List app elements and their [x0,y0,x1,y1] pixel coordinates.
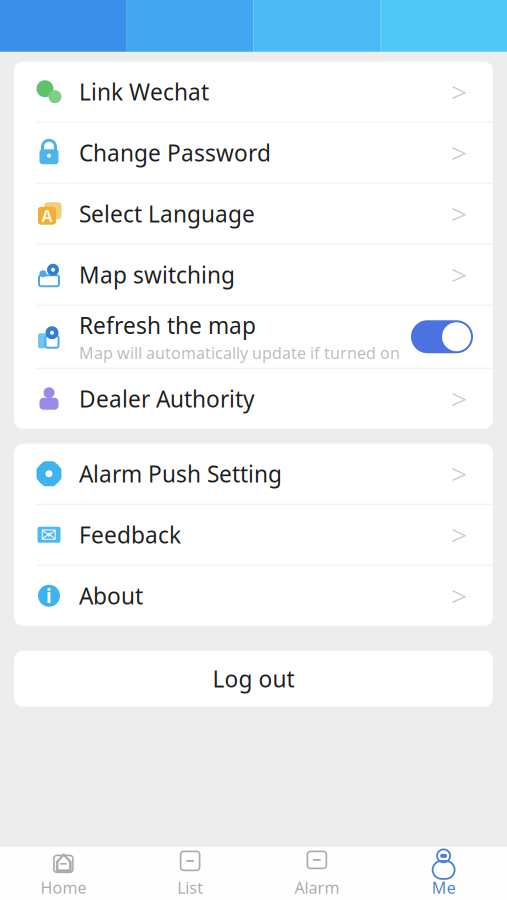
button[interactable]: Log out [0,651,507,707]
staticText: Refresh the map [79,310,256,340]
staticText: > [451,256,467,293]
staticText: Link Wechat [79,77,209,107]
staticText: Feedback [79,520,181,550]
staticText: > [451,134,467,171]
staticText: > [451,380,467,417]
staticText: ⌂ [53,843,73,879]
button[interactable]: Refresh the map [14,306,493,369]
staticText: Change Password [79,138,271,168]
staticText: > [451,73,467,110]
staticText: Log out [212,664,294,694]
staticText: > [451,577,467,614]
staticText: Dealer Authority [79,384,255,414]
button[interactable]: Alarm [253,846,380,900]
button[interactable]: Change Password [14,123,493,184]
staticText: i [46,583,52,608]
staticText: > [451,516,467,553]
staticText: Alarm Push Setting [79,459,282,489]
staticText: About [79,581,143,611]
button[interactable]: Me [380,846,507,900]
button[interactable]: Dealer Authority [14,369,493,429]
staticText: Alarm [294,877,339,898]
staticText: > [451,455,467,492]
staticText: Home [40,877,86,898]
staticText: Map switching [79,260,235,290]
staticText: Map will automatically update if turned … [79,342,400,363]
button[interactable]: ⌂ [0,846,127,900]
staticText: List [177,877,203,898]
staticText: A [41,205,52,226]
button[interactable]: A [14,184,493,245]
button[interactable]: i [14,566,493,626]
button[interactable]: Link Wechat [14,62,493,123]
staticText: Me [432,877,456,898]
button[interactable]: ✉ [14,505,493,566]
button[interactable]: Map switching [14,245,493,306]
button[interactable]: List [127,846,254,900]
staticText: > [451,195,467,232]
staticText: ✉ [40,523,57,546]
staticText: Select Language [79,199,255,229]
button[interactable]: Alarm Push Setting [14,444,493,505]
